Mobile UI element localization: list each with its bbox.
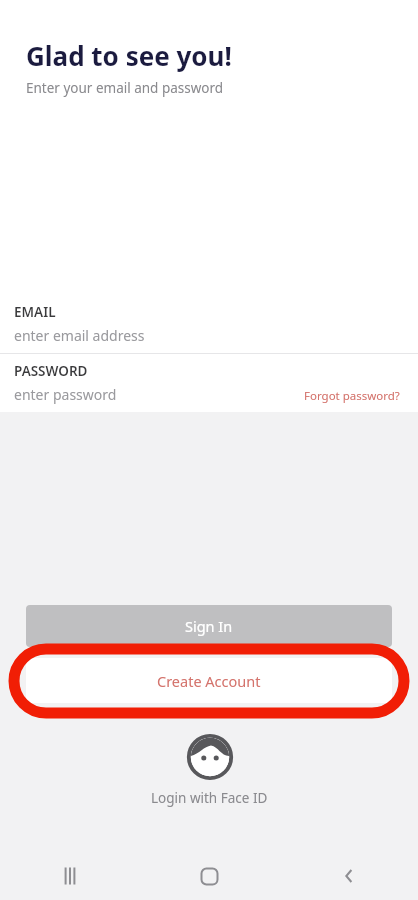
button[interactable]: PASSWORD bbox=[0, 354, 418, 412]
staticText: Forgot password? bbox=[304, 388, 400, 404]
button[interactable]: Recent apps bbox=[0, 852, 140, 900]
button[interactable]: Sign In bbox=[26, 605, 392, 647]
staticText: Login with Face ID bbox=[151, 789, 268, 807]
button[interactable]: Create Account bbox=[26, 658, 392, 703]
button[interactable]: Home bbox=[140, 852, 279, 900]
staticText: enter email address bbox=[14, 326, 145, 345]
staticText: EMAIL bbox=[14, 303, 56, 321]
button[interactable]: Forgot password? bbox=[304, 388, 400, 404]
staticText: Sign In bbox=[185, 616, 233, 636]
other: Login with Face ID bbox=[187, 734, 233, 780]
staticText: Glad to see you! bbox=[26, 38, 232, 73]
button[interactable]: Back bbox=[279, 852, 418, 900]
button[interactable]: Login with Face ID bbox=[133, 730, 286, 811]
button[interactable]: EMAIL bbox=[0, 295, 418, 353]
staticText: enter password bbox=[14, 385, 117, 404]
staticText: Enter your email and password bbox=[26, 79, 224, 97]
staticText: PASSWORD bbox=[14, 362, 88, 380]
staticText: Create Account bbox=[157, 671, 261, 691]
